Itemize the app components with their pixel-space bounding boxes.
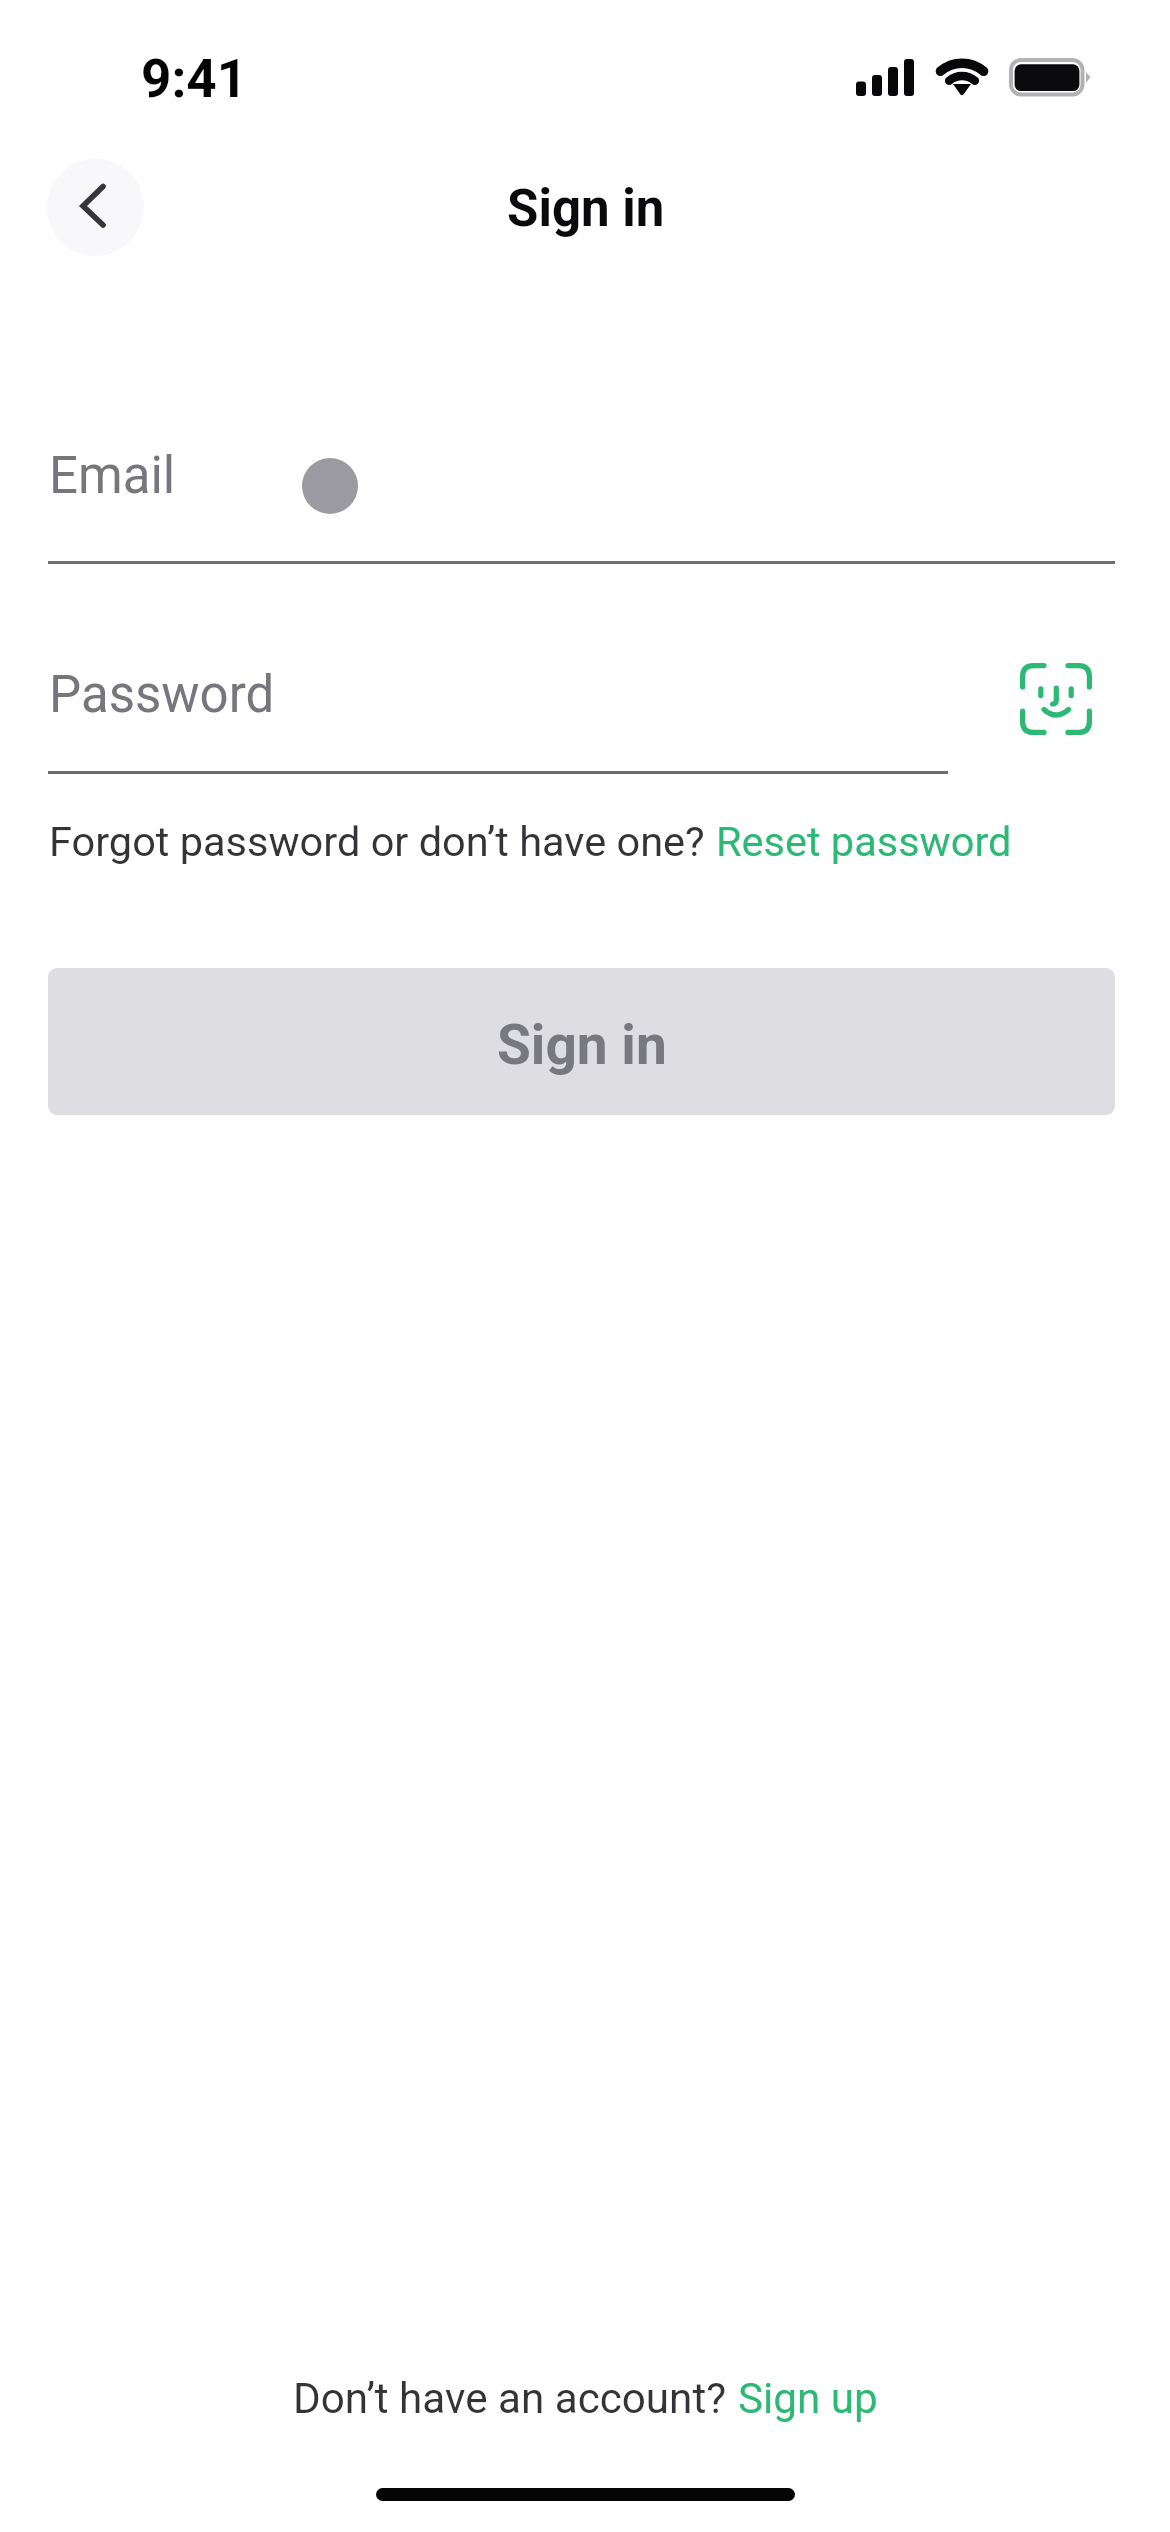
staticText: 9:41 bbox=[141, 48, 248, 110]
staticText: Forgot password or don’t have one? bbox=[49, 817, 705, 866]
button[interactable]: Sign in with Face ID bbox=[1000, 643, 1112, 755]
staticText: Email bbox=[49, 446, 176, 506]
staticText: Sign in bbox=[497, 1013, 667, 1077]
staticText: Don’t have an account? bbox=[293, 2374, 727, 2423]
staticText: Sign in bbox=[507, 179, 665, 239]
staticText: Password bbox=[49, 665, 275, 725]
button[interactable]: Sign up bbox=[738, 2374, 878, 2423]
button[interactable]: Reset password bbox=[716, 817, 1012, 866]
button[interactable]: Sign in bbox=[48, 968, 1115, 1115]
button[interactable]: Back bbox=[47, 159, 144, 256]
